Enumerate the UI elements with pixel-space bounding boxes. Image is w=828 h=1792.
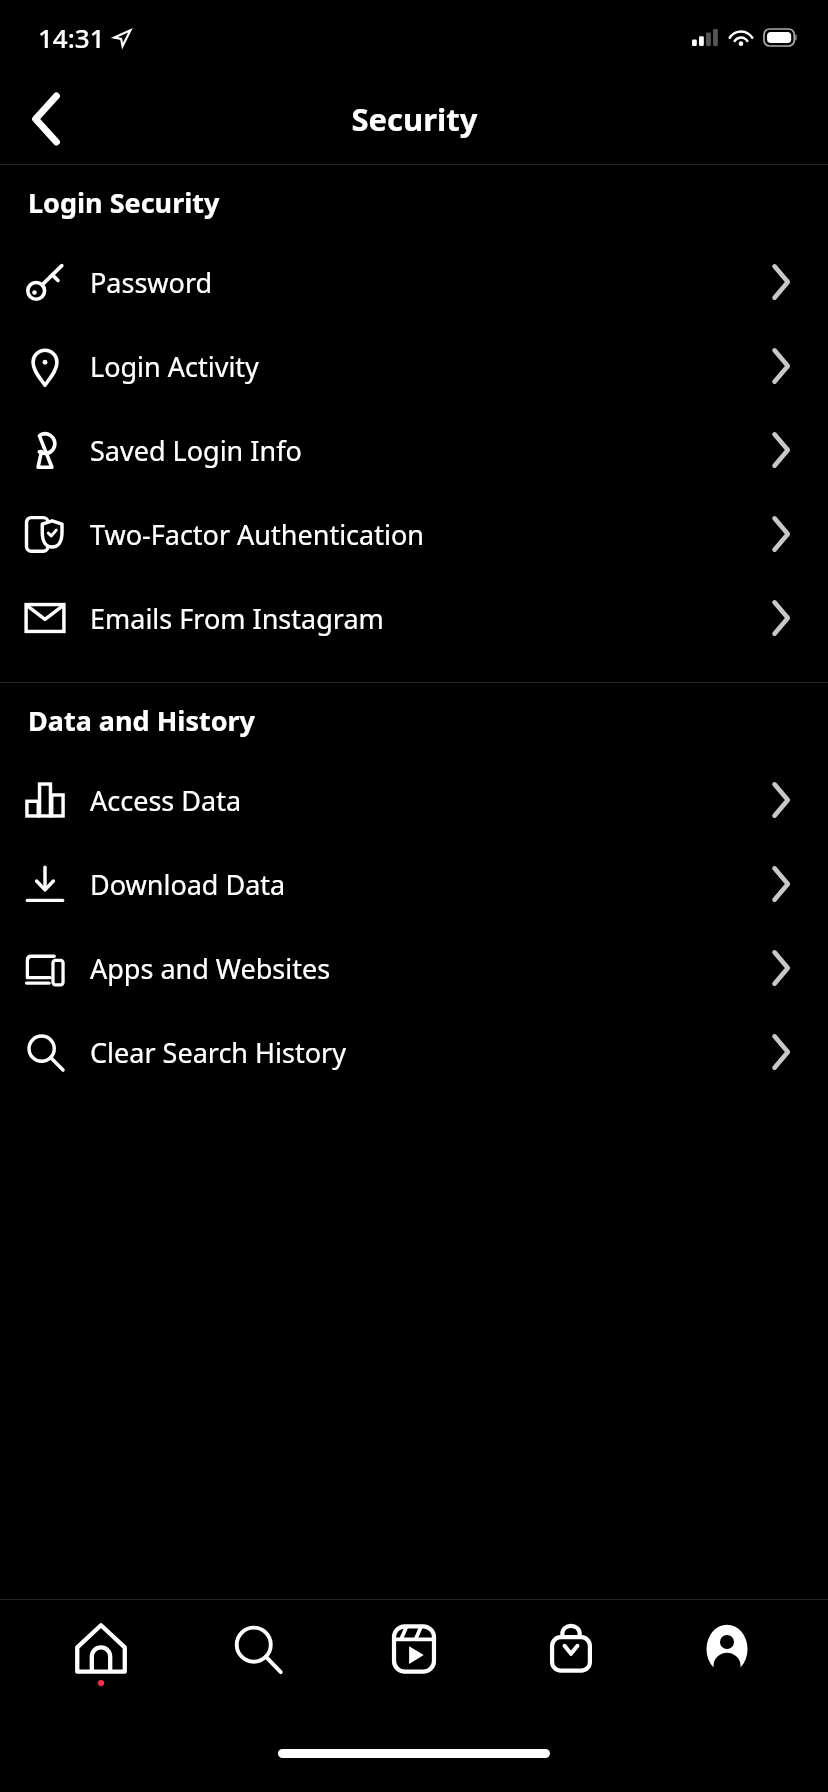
- button[interactable]: Reels: [358, 1600, 470, 1710]
- button[interactable]: Access Data: [0, 758, 828, 842]
- staticText: Apps and Websites: [90, 950, 331, 987]
- button[interactable]: Back: [8, 81, 84, 157]
- staticText: Emails From Instagram: [90, 600, 384, 637]
- button[interactable]: Search: [201, 1600, 313, 1710]
- staticText: Two-Factor Authentication: [90, 516, 424, 553]
- staticText: Clear Search History: [90, 1034, 346, 1071]
- button[interactable]: Shop: [515, 1600, 627, 1710]
- staticText: Password: [90, 264, 213, 301]
- button[interactable]: Home: [45, 1600, 157, 1710]
- staticText: Download Data: [90, 866, 286, 903]
- button[interactable]: Saved Login Info: [0, 408, 828, 492]
- button[interactable]: Password: [0, 240, 828, 324]
- button[interactable]: Login Activity: [0, 324, 828, 408]
- staticText: Security: [351, 98, 478, 140]
- staticText: Login Activity: [90, 348, 259, 385]
- button[interactable]: Apps and Websites: [0, 926, 828, 1010]
- button[interactable]: Clear Search History: [0, 1010, 828, 1094]
- staticText: Access Data: [90, 782, 242, 819]
- staticText: Login Security: [28, 184, 220, 221]
- staticText: Data and History: [28, 702, 256, 739]
- button[interactable]: Two-Factor Authentication: [0, 492, 828, 576]
- button[interactable]: Profile: [671, 1600, 783, 1710]
- button[interactable]: Emails From Instagram: [0, 576, 828, 660]
- button[interactable]: Download Data: [0, 842, 828, 926]
- staticText: 14:31: [38, 20, 105, 55]
- staticText: Saved Login Info: [90, 432, 302, 469]
